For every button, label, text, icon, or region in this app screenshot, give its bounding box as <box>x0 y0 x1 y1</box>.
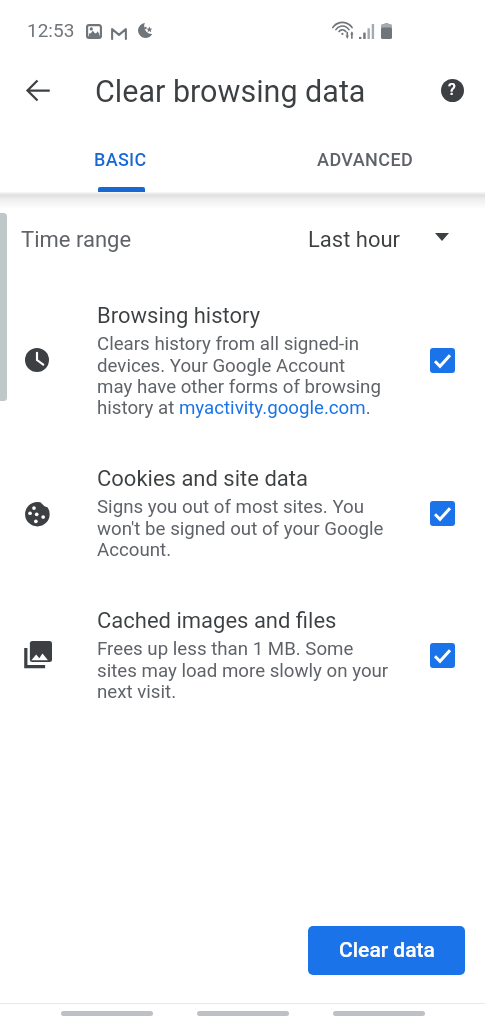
staticText: Clear browsing data <box>95 74 366 110</box>
staticText: Last hour <box>308 227 401 253</box>
staticText: Clears history from all signed-in device… <box>97 333 381 419</box>
button[interactable]: BASIC <box>0 126 242 196</box>
button[interactable]: Back <box>61 1011 153 1016</box>
button[interactable]: Clear data <box>308 926 465 975</box>
staticText: Signs you out of most sites. You won't b… <box>97 496 384 561</box>
button[interactable]: ADVANCED <box>242 126 485 196</box>
staticText: Time range <box>21 227 132 253</box>
button[interactable]: Time range <box>0 205 485 277</box>
button[interactable]: Recent apps <box>333 1011 425 1016</box>
staticText: 12:53 <box>27 19 75 41</box>
staticText: Browsing history <box>97 303 261 329</box>
staticText: ADVANCED <box>317 149 414 170</box>
button[interactable]: Home <box>197 1011 289 1016</box>
button[interactable]: Toggle Cookies and site data <box>430 501 455 526</box>
staticText: BASIC <box>94 149 147 170</box>
staticText: Cookies and site data <box>97 466 308 492</box>
staticText: ? <box>448 80 456 99</box>
staticText: Clear data <box>339 938 435 963</box>
button[interactable]: Toggle Browsing history <box>430 348 455 373</box>
staticText: Cached images and files <box>97 608 337 634</box>
button[interactable]: Help <box>428 66 476 114</box>
staticText: Frees up less than 1 MB. Some sites may … <box>97 638 389 703</box>
button[interactable]: Back <box>14 66 62 114</box>
button[interactable]: Toggle Cached images and files <box>430 643 455 668</box>
